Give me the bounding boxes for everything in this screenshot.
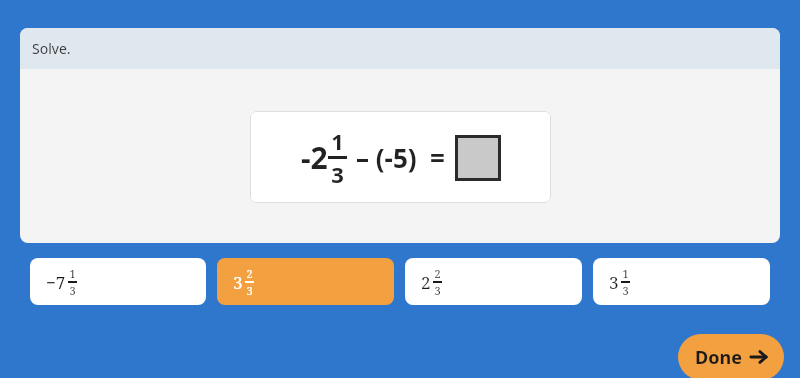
staticText: – (-5) =	[356, 140, 445, 175]
staticText: 3	[434, 283, 441, 298]
staticText: -2	[301, 137, 328, 178]
staticText: 2	[421, 271, 431, 294]
staticText: 1	[331, 126, 344, 156]
button[interactable]: 3	[593, 258, 770, 305]
staticText: 2	[246, 266, 253, 281]
button[interactable]: −7	[30, 258, 206, 305]
staticText: 3	[233, 271, 243, 294]
staticText: 3	[622, 283, 629, 298]
staticText: 1	[69, 266, 76, 281]
staticText: −7	[46, 271, 66, 294]
staticText: Done	[695, 345, 742, 370]
staticText: 2	[434, 266, 441, 281]
staticText: 3	[331, 159, 344, 189]
staticText: 3	[69, 283, 76, 298]
button[interactable]: 3	[217, 258, 394, 305]
staticText: 3	[609, 271, 619, 294]
staticText: 3	[246, 283, 253, 298]
other: Submit	[750, 348, 768, 366]
button[interactable]: Done	[678, 334, 784, 378]
staticText: 1	[622, 266, 629, 281]
button[interactable]: 2	[405, 258, 582, 305]
staticText: Solve.	[32, 39, 71, 58]
